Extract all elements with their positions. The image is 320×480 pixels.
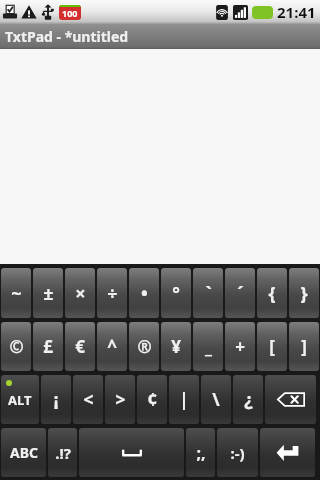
staticText: ° — [172, 281, 180, 306]
staticText: ALT — [8, 391, 32, 409]
staticText: ´ — [237, 281, 244, 306]
button[interactable]: ALT — [1, 375, 39, 424]
staticText: > — [115, 387, 126, 412]
staticText: .!? — [55, 443, 71, 463]
button[interactable]: Space — [79, 428, 184, 477]
staticText: 21:41 — [277, 2, 316, 22]
button[interactable]: ¿ — [233, 375, 263, 424]
staticText: _ — [205, 335, 212, 358]
staticText: ABC — [10, 443, 38, 462]
staticText: ® — [137, 335, 152, 358]
staticText: £ — [43, 335, 53, 358]
button[interactable]: ABC — [1, 428, 46, 477]
staticText: ¥ — [171, 335, 181, 358]
staticText: 100 — [62, 7, 78, 19]
staticText: • — [141, 281, 148, 306]
staticText: \ — [212, 387, 220, 412]
button[interactable]: € — [65, 322, 95, 371]
staticText: × — [75, 281, 86, 306]
button[interactable]: > — [105, 375, 135, 424]
staticText: € — [75, 335, 85, 358]
button[interactable]: ¢ — [137, 375, 167, 424]
staticText: ;, — [196, 442, 206, 464]
staticText: © — [9, 335, 24, 358]
button[interactable]: } — [289, 268, 319, 318]
button[interactable]: :-) — [217, 428, 258, 477]
staticText: { — [268, 281, 276, 306]
staticText: TxtPad - *untitled — [5, 27, 129, 46]
button[interactable]: { — [257, 268, 287, 318]
staticText: ] — [301, 335, 307, 358]
staticText: ¢ — [147, 387, 158, 412]
button[interactable]: ¥ — [161, 322, 191, 371]
button[interactable]: ¡ — [41, 375, 71, 424]
button[interactable]: \ — [201, 375, 231, 424]
staticText: ÷ — [107, 281, 118, 306]
button[interactable]: _ — [193, 322, 223, 371]
button[interactable]: < — [73, 375, 103, 424]
button[interactable]: ´ — [225, 268, 255, 318]
staticText: ` — [205, 281, 212, 306]
staticText: :-) — [230, 443, 245, 463]
button[interactable]: | — [169, 375, 199, 424]
button[interactable]: ÷ — [97, 268, 127, 318]
staticText: [ — [269, 335, 275, 358]
button[interactable]: ] — [289, 322, 319, 371]
button[interactable]: © — [1, 322, 31, 371]
button[interactable]: • — [129, 268, 159, 318]
button[interactable]: ^ — [97, 322, 127, 371]
button[interactable]: Backspace — [265, 375, 316, 424]
staticText: | — [179, 387, 189, 412]
staticText: ^ — [107, 335, 117, 358]
button[interactable]: ° — [161, 268, 191, 318]
staticText: ¡ — [53, 387, 59, 412]
staticText: ¿ — [244, 387, 253, 412]
button[interactable]: × — [65, 268, 95, 318]
button[interactable]: ~ — [1, 268, 31, 318]
staticText: ± — [43, 281, 54, 306]
staticText: ~ — [11, 281, 22, 306]
button[interactable]: ` — [193, 268, 223, 318]
button[interactable]: [ — [257, 322, 287, 371]
button[interactable]: Enter — [260, 428, 315, 477]
button[interactable]: + — [225, 322, 255, 371]
staticText: < — [83, 387, 94, 412]
button[interactable]: .!? — [48, 428, 77, 477]
staticText: } — [300, 281, 308, 306]
button[interactable]: ± — [33, 268, 63, 318]
button[interactable]: ;, — [186, 428, 215, 477]
button[interactable]: ® — [129, 322, 159, 371]
staticText: + — [235, 335, 245, 358]
button[interactable]: £ — [33, 322, 63, 371]
